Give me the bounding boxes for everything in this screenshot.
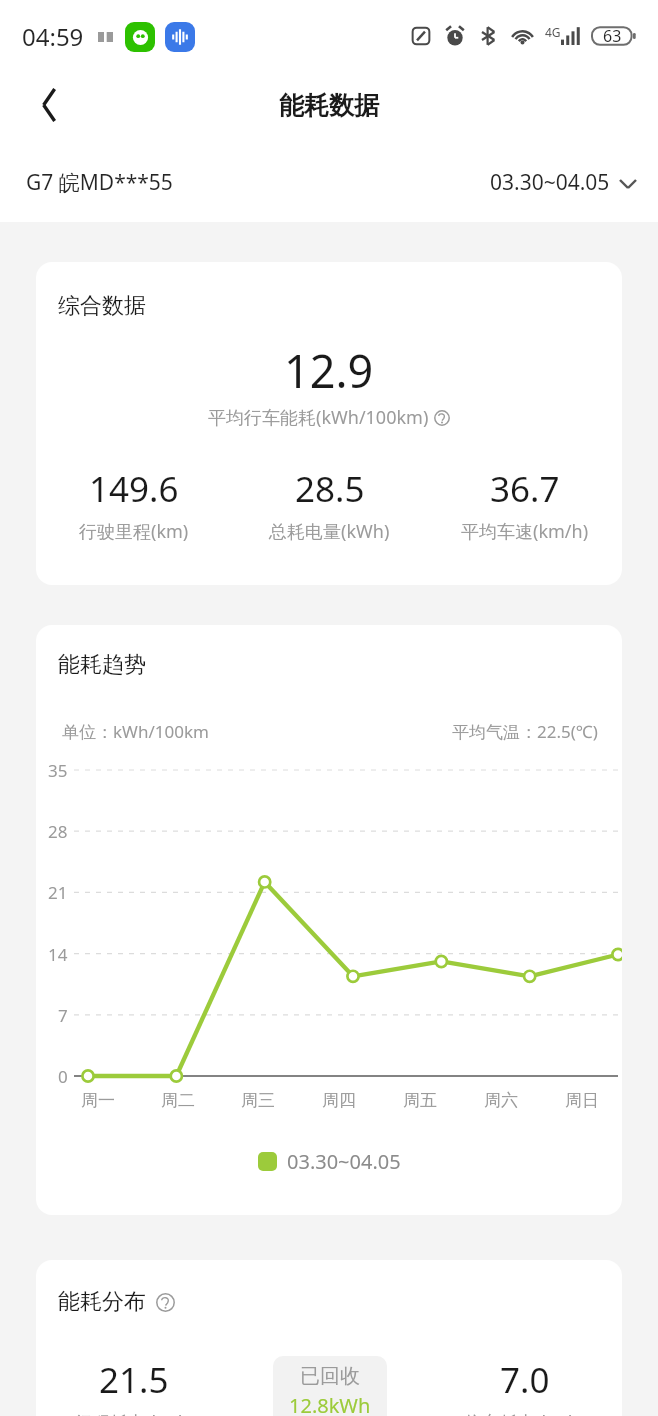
- button[interactable]: Back: [20, 77, 76, 133]
- staticText: 能耗分布: [58, 1288, 146, 1316]
- staticText: 平均气温：22.5(℃): [452, 720, 598, 743]
- staticText: 总耗电量(kWh): [269, 519, 390, 544]
- staticText: 28: [48, 820, 68, 843]
- staticText: 12.9: [284, 340, 374, 401]
- staticText: 单位：kWh/100km: [62, 720, 209, 743]
- staticText: 35: [48, 759, 68, 782]
- staticText: 行程耗电(kWh): [74, 1410, 195, 1416]
- staticText: 4G: [545, 24, 561, 40]
- staticText: 12.8kWh: [289, 1392, 371, 1416]
- button[interactable]: 能耗趋势: [36, 625, 622, 1215]
- staticText: 7: [58, 1004, 68, 1027]
- button[interactable]: 能耗分布: [36, 1260, 622, 1416]
- staticText: 周五: [403, 1090, 437, 1111]
- staticText: 03.30~04.05: [490, 168, 610, 197]
- staticText: 21.5: [99, 1356, 169, 1404]
- staticText: 周日: [565, 1090, 599, 1111]
- staticText: 能耗趋势: [58, 651, 146, 679]
- staticText: 14: [48, 943, 68, 966]
- staticText: 已回收: [300, 1364, 360, 1389]
- staticText: 04:59: [22, 20, 84, 53]
- staticText: 03.30~04.05: [287, 1148, 401, 1175]
- staticText: 综合数据: [58, 292, 146, 320]
- button[interactable]: 综合数据: [36, 262, 622, 585]
- staticText: 周一: [81, 1090, 115, 1111]
- staticText: G7 皖MD***55: [26, 168, 173, 197]
- staticText: 63: [603, 25, 622, 47]
- staticText: 0: [58, 1065, 68, 1088]
- staticText: 28.5: [295, 465, 365, 513]
- staticText: 平均行车能耗(kWh/100km): [208, 405, 429, 430]
- staticText: 周四: [322, 1090, 356, 1111]
- staticText: 能耗数据: [279, 90, 379, 121]
- staticText: 36.7: [490, 465, 560, 513]
- staticText: 149.6: [89, 465, 179, 513]
- staticText: 停车耗电(kWh): [464, 1410, 585, 1416]
- staticText: 行驶里程(km): [79, 519, 189, 544]
- staticText: 平均车速(km/h): [461, 519, 589, 544]
- staticText: 周二: [161, 1090, 195, 1111]
- button[interactable]: 03.30~04.05: [490, 168, 638, 197]
- staticText: 21: [48, 881, 68, 904]
- staticText: 周三: [241, 1090, 275, 1111]
- staticText: 7.0: [500, 1356, 550, 1404]
- staticText: 周六: [484, 1090, 518, 1111]
